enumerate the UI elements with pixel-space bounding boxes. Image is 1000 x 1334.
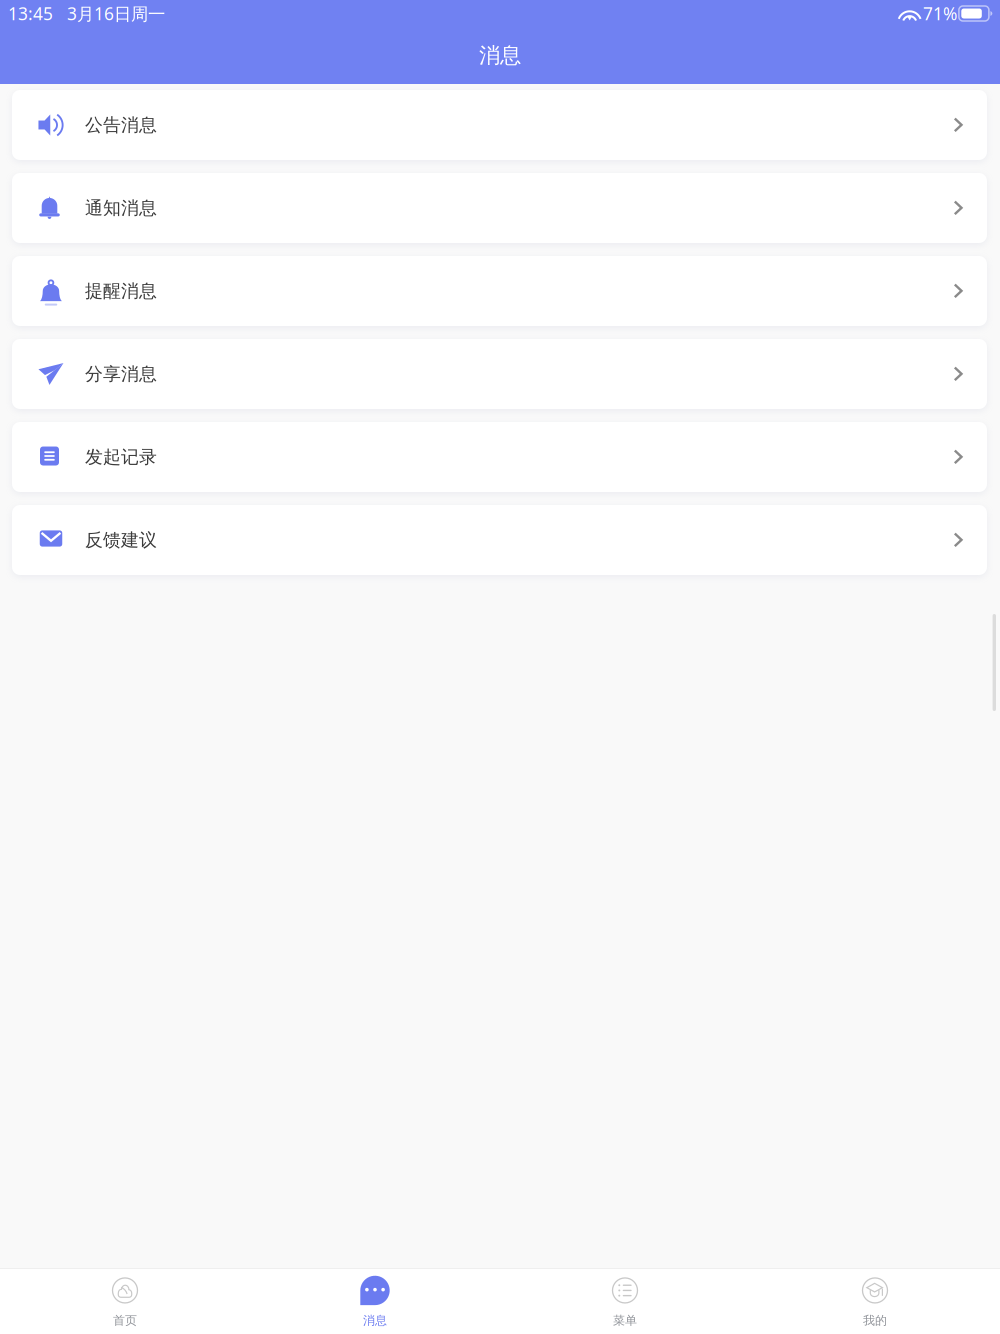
staticText: 3月16日周一 (67, 2, 165, 25)
button[interactable]: 通知消息 (12, 173, 987, 243)
staticText: 首页 (113, 1313, 137, 1328)
staticText: 消息 (479, 42, 521, 69)
staticText: 13:45 (8, 2, 53, 25)
button[interactable]: 分享消息 (12, 339, 987, 409)
button[interactable]: 首页 (0, 1268, 250, 1334)
button[interactable]: 我的 (750, 1268, 1000, 1334)
button[interactable]: 消息 (250, 1268, 500, 1334)
staticText: 我的 (863, 1313, 887, 1328)
staticText: 反馈建议 (85, 529, 157, 551)
staticText: 分享消息 (85, 363, 157, 385)
button[interactable]: 菜单 (500, 1268, 750, 1334)
staticText: 提醒消息 (85, 280, 157, 302)
staticText: 菜单 (613, 1313, 637, 1328)
button[interactable]: 提醒消息 (12, 256, 987, 326)
staticText: 消息 (363, 1313, 387, 1328)
staticText: 公告消息 (85, 114, 157, 136)
staticText: 通知消息 (85, 197, 157, 219)
button[interactable]: 反馈建议 (12, 505, 987, 575)
staticText: 发起记录 (85, 446, 157, 468)
button[interactable]: 发起记录 (12, 422, 987, 492)
staticText: 71% (923, 2, 957, 25)
button[interactable]: 公告消息 (12, 90, 987, 160)
